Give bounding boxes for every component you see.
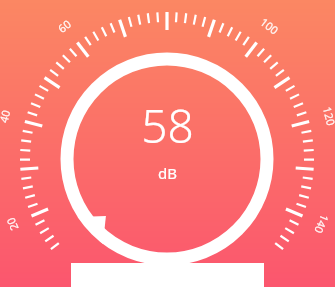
staticText: 58 [141,94,194,157]
staticText: dB [158,163,177,183]
button[interactable]: Sound level gauge, 58 decibels [0,0,335,287]
